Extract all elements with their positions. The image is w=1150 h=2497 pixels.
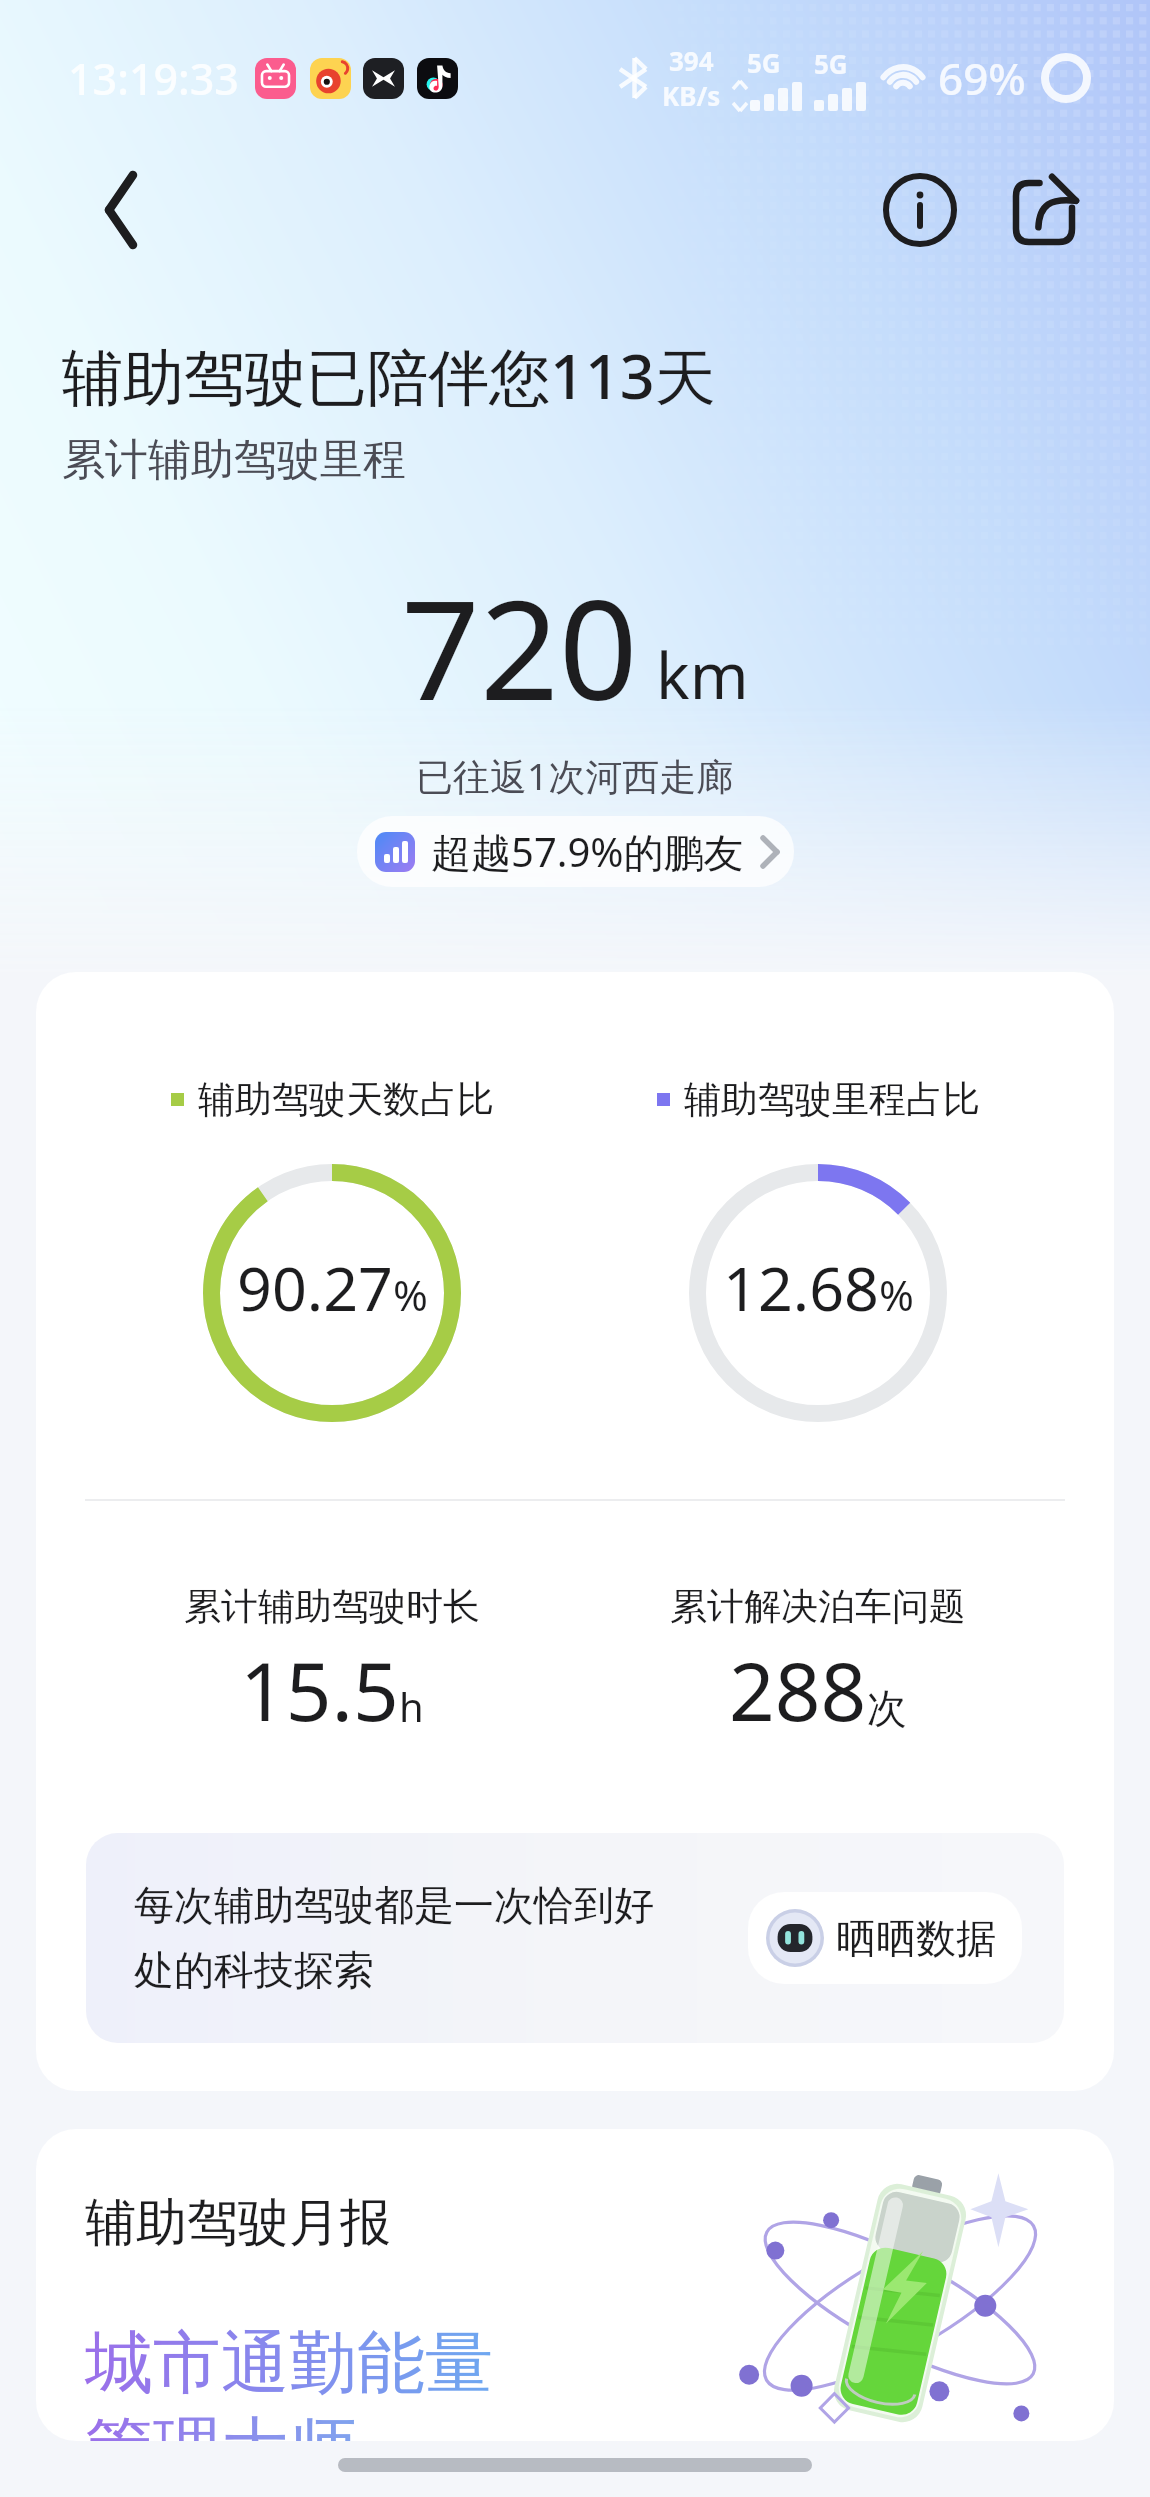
staticText: KB/s — [662, 78, 721, 113]
staticText: 辅助驾驶天数占比 — [198, 1076, 494, 1123]
staticText: 晒晒数据 — [836, 1913, 996, 1963]
staticText: 管理大师 — [85, 2407, 357, 2441]
staticText: 394 — [669, 43, 714, 78]
staticText: 12.68 — [723, 1246, 879, 1329]
staticText: 累计辅助驾驶里程 — [62, 433, 406, 487]
staticText: 城市通勤能量 — [85, 2321, 493, 2407]
staticText: km — [656, 632, 749, 718]
staticText: 次 — [867, 1683, 907, 1733]
staticText: 90.27 — [237, 1246, 393, 1329]
button[interactable]: Info — [872, 162, 968, 258]
staticText: 288 — [729, 1635, 867, 1744]
staticText: h — [399, 1679, 424, 1733]
staticText: % — [879, 1266, 914, 1323]
staticText: 720 — [401, 552, 638, 740]
staticText: 13:19:33 — [68, 49, 239, 108]
button[interactable]: Share — [996, 162, 1092, 258]
button[interactable]: 晒晒数据 — [748, 1892, 1022, 1984]
staticText: 每次辅助驾驶都是一次恰到好 处的科技探索 — [134, 1880, 654, 1996]
staticText: 辅助驾驶里程占比 — [684, 1076, 980, 1123]
staticText: 5G — [814, 46, 848, 81]
staticText: 5G — [747, 45, 781, 80]
staticText: 辅助驾驶已陪伴您113天 — [62, 334, 716, 417]
staticText: 累计辅助驾驶时长 — [184, 1583, 480, 1630]
staticText: 69% — [938, 48, 1026, 108]
staticText: 已往返1次河西走廊 — [416, 750, 734, 801]
button[interactable]: 超越57.9%的鹏友 — [357, 816, 794, 887]
button[interactable]: Back — [72, 165, 162, 255]
staticText: 15.5 — [240, 1635, 399, 1744]
staticText: 累计解决泊车问题 — [670, 1583, 966, 1630]
staticText: % — [393, 1266, 428, 1323]
staticText: 辅助驾驶月报 — [85, 2191, 391, 2255]
staticText: 超越57.9%的鹏友 — [431, 824, 744, 879]
